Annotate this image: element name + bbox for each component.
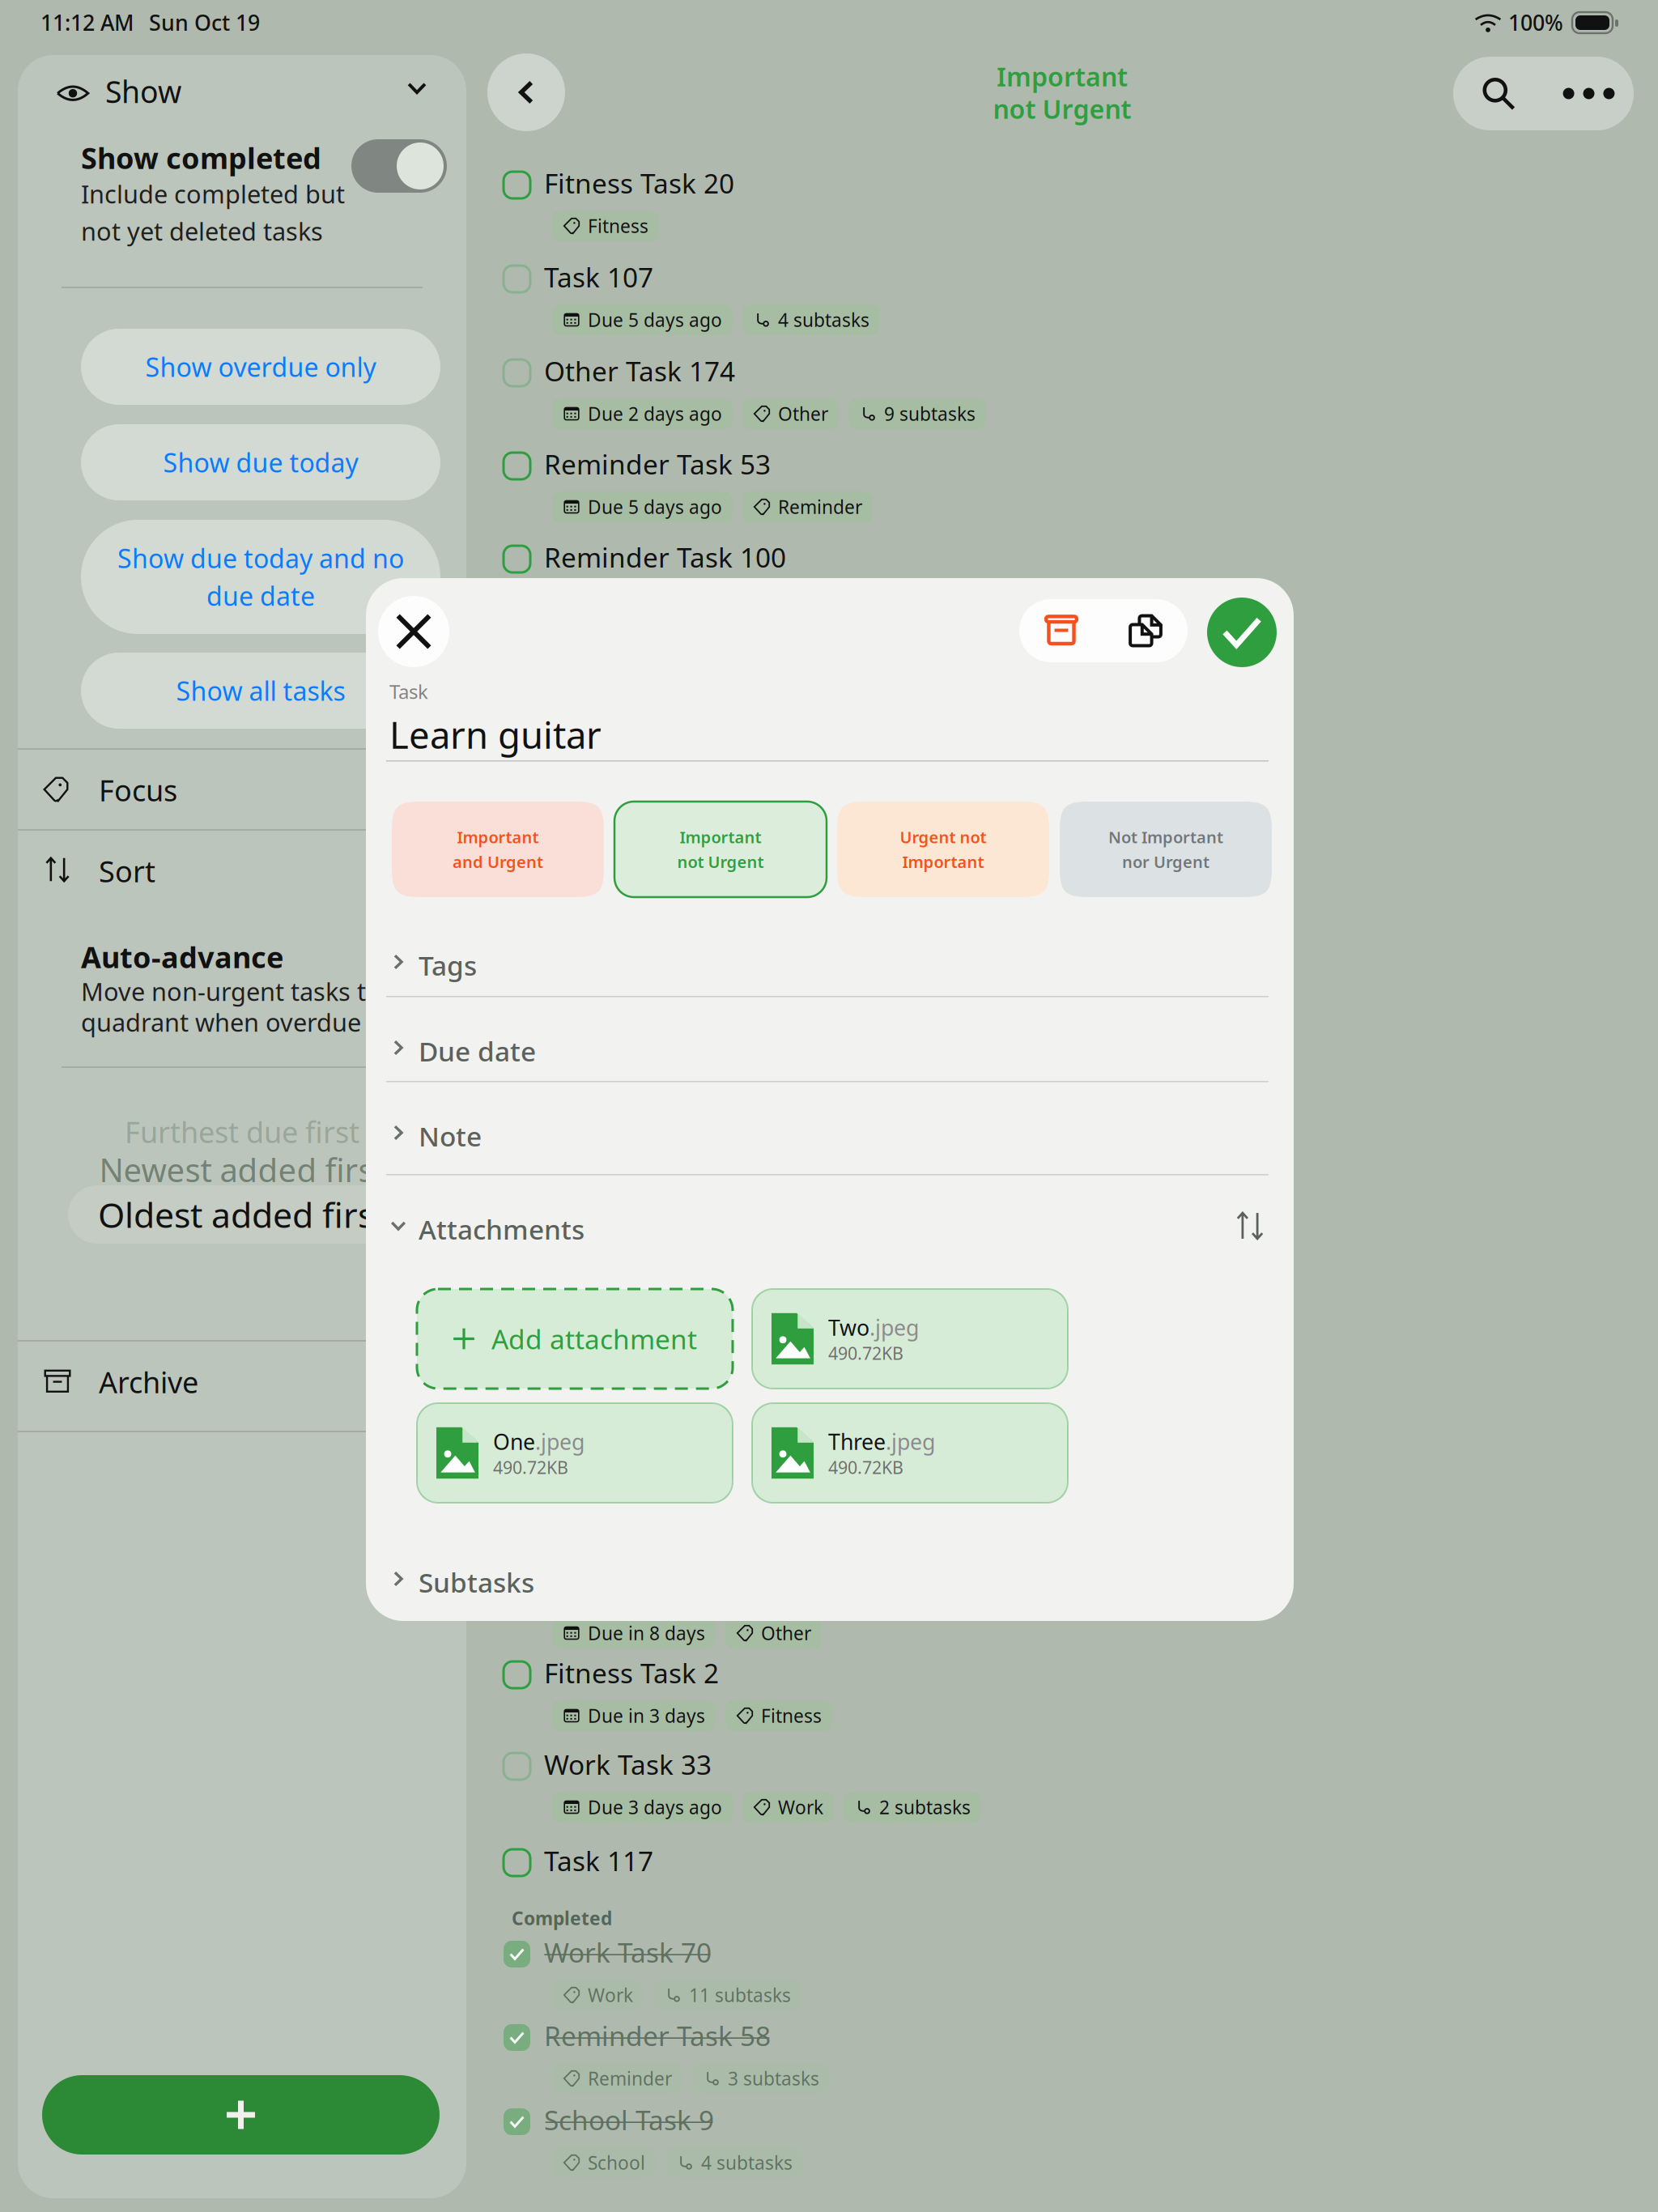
- staticText: Work Task 9: [544, 1197, 696, 1233]
- staticText: Important: [902, 851, 984, 872]
- button[interactable]: Due date: [386, 1014, 1269, 1082]
- staticText: Move non-urgent tasks to urgent: [81, 975, 466, 1008]
- button[interactable]: Show: [18, 55, 466, 136]
- button[interactable]: Add task: [42, 2075, 440, 2155]
- staticText: 490.72KB: [493, 1456, 568, 1479]
- staticText: 2 subtasks: [879, 1795, 971, 1819]
- staticText: Due in 2 days: [588, 869, 705, 894]
- staticText: Work: [778, 1795, 823, 1819]
- button[interactable]: Subtasks: [386, 1545, 1269, 1613]
- button[interactable]: Show due today: [81, 424, 440, 500]
- staticText: Task 107: [544, 259, 653, 295]
- button[interactable]: Sort: [18, 831, 466, 910]
- staticText: not Urgent: [677, 851, 764, 872]
- staticText: 490.72KB: [828, 1342, 903, 1365]
- staticText: Urgent not: [900, 826, 986, 848]
- button[interactable]: Note: [386, 1099, 1269, 1167]
- staticText: Newest added first: [99, 1148, 385, 1191]
- staticText: School: [588, 2150, 645, 2175]
- button[interactable]: Close: [378, 596, 449, 667]
- button[interactable]: Urgent not: [837, 802, 1049, 897]
- button[interactable]: Search: [1453, 57, 1544, 130]
- staticText: Show due today and no: [117, 541, 404, 575]
- button[interactable]: Duplicate: [1103, 599, 1188, 662]
- button[interactable]: Show overdue only: [81, 329, 440, 405]
- staticText: 4 subtasks: [778, 308, 869, 332]
- button[interactable]: Complete task: [1207, 598, 1277, 667]
- button[interactable]: Three: [752, 1403, 1068, 1503]
- staticText: Show overdue only: [145, 350, 376, 384]
- staticText: Fitness Task 2: [544, 1655, 719, 1691]
- staticText: not Urgent: [993, 91, 1131, 126]
- staticText: Due 5 days ago: [588, 495, 722, 519]
- button[interactable]: Not Important: [1060, 802, 1272, 897]
- button[interactable]: Show all tasks: [81, 653, 440, 729]
- staticText: Other: [778, 402, 828, 426]
- staticText: 100%: [1508, 8, 1563, 37]
- staticText: Task: [389, 678, 428, 704]
- staticText: Due 2 days ago: [588, 402, 722, 426]
- staticText: quadrant when overdue: [81, 1006, 361, 1039]
- button[interactable]: Add attachment: [417, 1289, 733, 1389]
- button[interactable]: Tags: [386, 928, 1269, 996]
- staticText: Work: [588, 1983, 633, 2007]
- button[interactable]: Important: [614, 802, 827, 897]
- staticText: Due in 4 days: [588, 1057, 705, 1082]
- button[interactable]: Important: [392, 802, 604, 897]
- staticText: Work Task 33: [544, 1746, 712, 1782]
- staticText: Other Task 174: [544, 353, 735, 389]
- button[interactable]: Archive: [1019, 599, 1103, 662]
- staticText: Show all tasks: [176, 673, 345, 708]
- staticText: Sort: [99, 852, 155, 890]
- staticText: Due 3 days ago: [588, 1795, 722, 1819]
- staticText: Task 45: [544, 1478, 638, 1514]
- staticText: Important: [680, 826, 761, 848]
- staticText: Fitness: [761, 1703, 822, 1728]
- staticText: Reminder: [778, 495, 862, 519]
- staticText: 3 subtasks: [728, 2066, 819, 2091]
- staticText: 4 subtasks: [701, 2150, 793, 2175]
- staticText: 11 subtasks: [689, 1983, 791, 2007]
- button[interactable]: Show due today and no: [81, 520, 440, 634]
- button[interactable]: Two: [752, 1289, 1068, 1389]
- staticText: 11:12 AM: [40, 8, 134, 37]
- staticText: Reminder: [761, 1339, 845, 1363]
- button[interactable]: Back: [487, 53, 565, 131]
- staticText: Other: [761, 1621, 811, 1645]
- button[interactable]: Attachments: [386, 1192, 1269, 1260]
- staticText: 490.72KB: [828, 1456, 903, 1479]
- staticText: Task 117: [544, 1843, 653, 1879]
- staticText: Important: [997, 59, 1128, 94]
- staticText: .jpeg: [886, 1427, 935, 1456]
- staticText: Two: [828, 1313, 869, 1342]
- button[interactable]: More options: [1544, 57, 1634, 130]
- staticText: Subtasks: [419, 1564, 534, 1600]
- button[interactable]: Focus: [18, 750, 466, 829]
- staticText: Furthest due first: [125, 1112, 359, 1151]
- staticText: Reminder: [588, 2066, 672, 2091]
- staticText: Important: [457, 826, 539, 848]
- staticText: Sun Oct 19: [149, 8, 260, 37]
- staticText: 6 subtasks: [867, 1151, 959, 1176]
- button[interactable]: Archive: [18, 1342, 466, 1421]
- staticText: Fitness: [588, 214, 648, 238]
- staticText: Completed: [512, 1906, 612, 1930]
- staticText: School Task 21: [544, 1385, 729, 1420]
- staticText: Other Task 12: [544, 821, 720, 857]
- staticText: Due 5 days ago: [588, 308, 722, 332]
- button[interactable]: One: [417, 1403, 733, 1503]
- staticText: Reminder Task 100: [544, 539, 786, 575]
- staticText: Work Task 70: [544, 1934, 712, 1970]
- staticText: .jpeg: [869, 1313, 919, 1342]
